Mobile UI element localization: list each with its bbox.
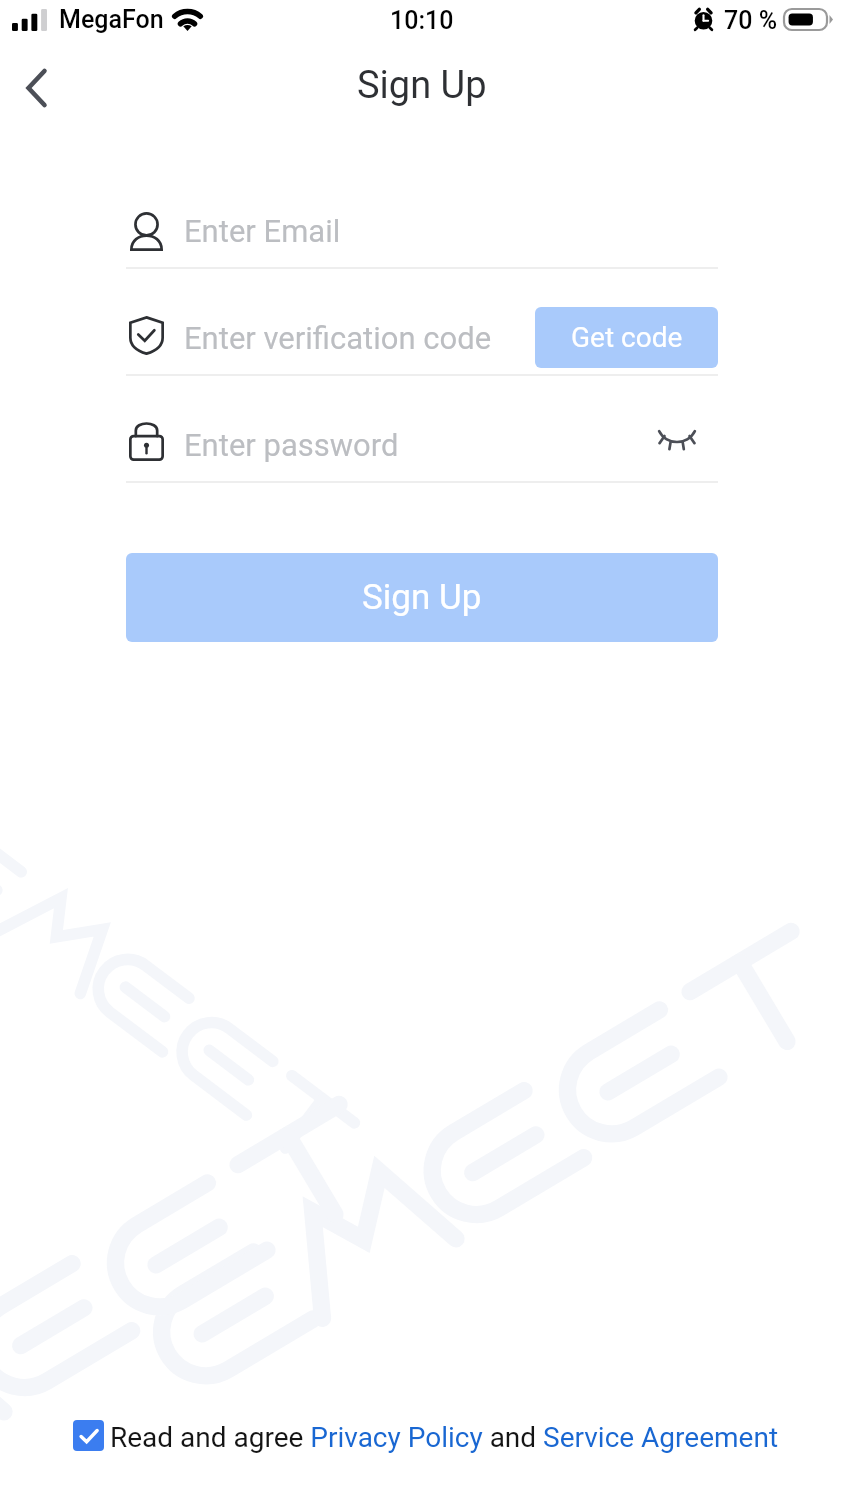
button[interactable]: Sign Up	[126, 553, 718, 642]
staticText: Read and agree Privacy Policy and Servic…	[110, 1421, 779, 1454]
button[interactable]: Back	[8, 60, 64, 116]
staticText: Get code	[571, 321, 683, 354]
button[interactable]: Get code	[535, 307, 718, 368]
staticText: 10:10	[390, 6, 454, 35]
staticText: Enter Email	[184, 213, 341, 249]
staticText: Sign Up	[362, 577, 482, 618]
staticText: Sign Up	[357, 63, 487, 108]
staticText: Enter verification code	[184, 320, 492, 356]
button[interactable]: Agree checkbox	[73, 1420, 104, 1451]
staticText: 70 %	[724, 6, 778, 35]
staticText: Enter password	[184, 427, 399, 463]
button[interactable]: Show password	[658, 415, 718, 475]
staticText: MegaFon	[59, 5, 164, 34]
